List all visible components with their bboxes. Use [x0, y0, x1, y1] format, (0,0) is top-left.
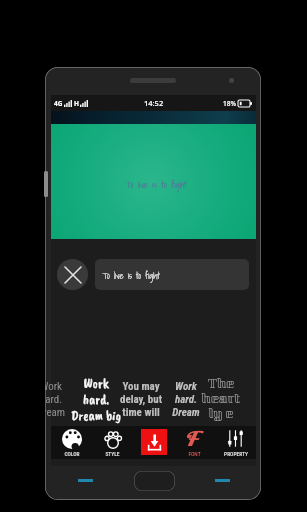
staticText: STYLE	[105, 451, 120, 457]
staticText: PROPERTY	[224, 451, 248, 457]
button[interactable]: F	[174, 426, 215, 459]
button[interactable]: STYLE	[92, 426, 133, 459]
staticText: F	[174, 426, 204, 446]
staticText: 4G	[54, 99, 63, 108]
staticText: You may delay, but time will never	[119, 380, 163, 419]
button[interactable]: Close	[57, 259, 88, 290]
staticText: COLOR	[64, 451, 80, 457]
button[interactable]: PROPERTY	[215, 426, 256, 459]
staticText: The heart ly e	[197, 374, 245, 425]
staticText: Work hard. Dream big	[45, 380, 73, 419]
button[interactable]: Work hard. Dream	[163, 368, 208, 430]
button[interactable]: You may delay, but time will never	[118, 368, 163, 430]
staticText: 18%	[223, 99, 236, 108]
button[interactable]: Work hard. Dream big	[45, 368, 73, 430]
staticText: To live is to fight	[102, 268, 160, 282]
button[interactable]: Work hard. Dream big	[73, 368, 118, 430]
staticText: H	[74, 99, 79, 108]
button[interactable]: COLOR	[51, 426, 92, 459]
staticText: To live is to fight	[125, 177, 187, 192]
button[interactable]: The heart ly e	[208, 368, 233, 430]
staticText: Work hard. Dream big	[69, 375, 123, 424]
staticText: Work hard. Dream	[164, 380, 208, 419]
button[interactable]: To live is to fight	[95, 259, 249, 290]
staticText: 14:52	[144, 98, 164, 108]
button[interactable]: Save	[141, 429, 167, 455]
staticText: FONT	[188, 451, 201, 457]
